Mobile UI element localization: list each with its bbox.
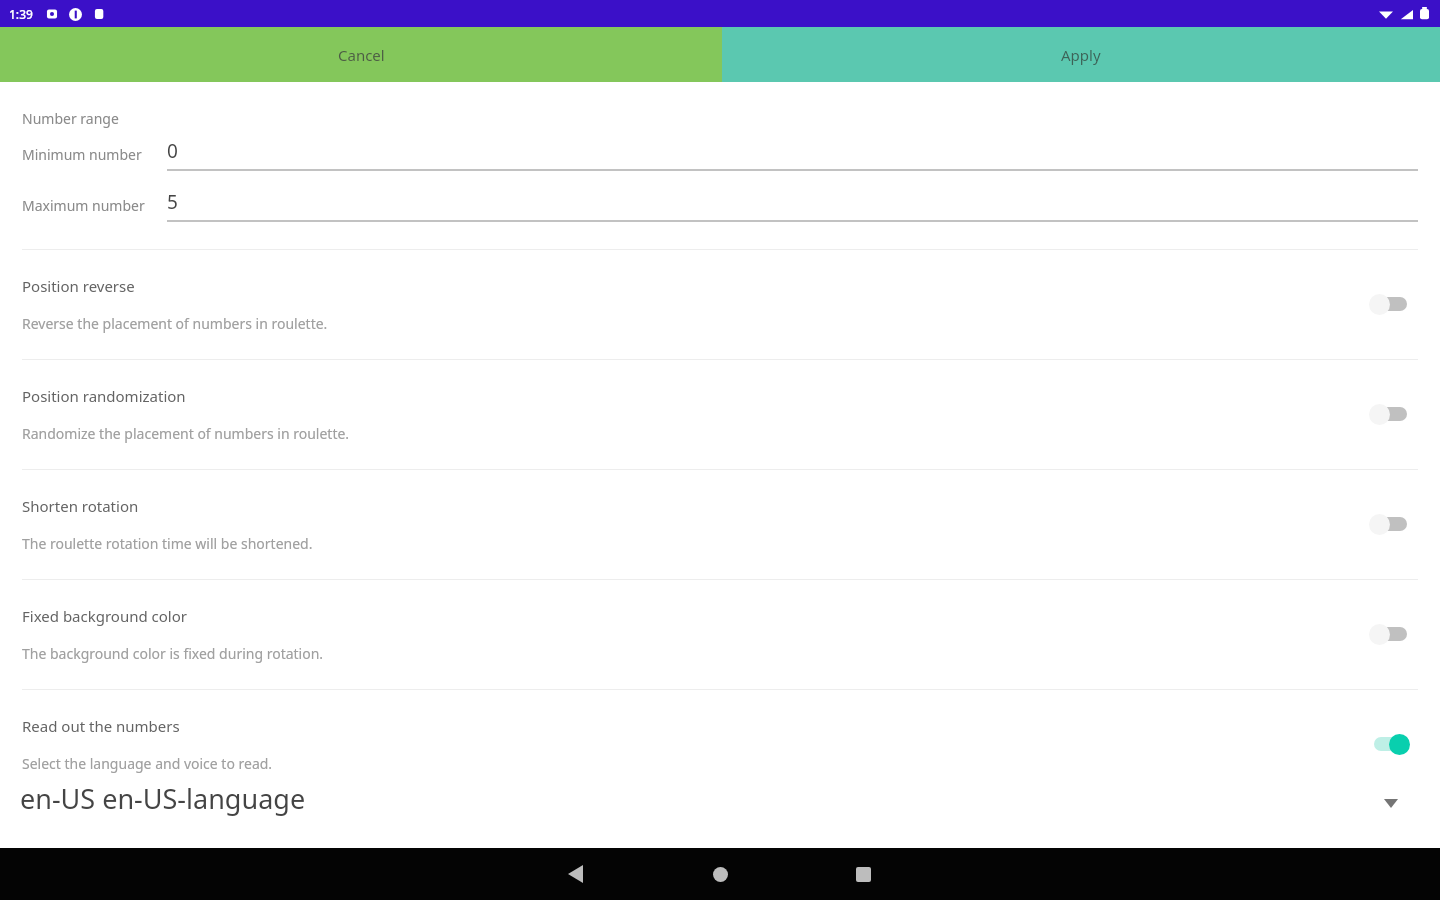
button[interactable]: Fixed background color — [1363, 616, 1419, 652]
button[interactable]: Read out the numbers — [1363, 726, 1419, 762]
button[interactable]: en-US en-US-language — [0, 774, 1440, 832]
button[interactable]: Read out the numbers — [0, 689, 1440, 799]
staticText: 5 — [167, 189, 178, 215]
staticText: Minimum number — [22, 145, 142, 164]
other: Select language — [1384, 799, 1398, 808]
staticText: Position reverse — [22, 276, 135, 296]
button[interactable]: Position randomization — [0, 359, 1440, 469]
staticText: Maximum number — [22, 196, 145, 215]
staticText: 0 — [167, 138, 178, 164]
staticText: Cancel — [338, 45, 385, 65]
button[interactable]: Fixed background color — [0, 579, 1440, 689]
staticText: Position randomization — [22, 386, 186, 406]
staticText: en-US en-US-language — [20, 780, 306, 817]
staticText: Shorten rotation — [22, 496, 139, 516]
staticText: Fixed background color — [22, 606, 188, 626]
button[interactable]: Recent apps — [844, 855, 882, 893]
staticText: 1:39 — [9, 6, 33, 22]
button[interactable]: Cancel — [0, 27, 722, 82]
button[interactable]: Home — [701, 855, 739, 893]
button[interactable]: Shorten rotation — [1363, 506, 1419, 542]
button[interactable]: Position reverse — [1363, 286, 1419, 322]
staticText: The background color is fixed during rot… — [22, 644, 324, 663]
staticText: The roulette rotation time will be short… — [22, 534, 313, 553]
staticText: Number range — [22, 109, 119, 128]
button[interactable]: Shorten rotation — [0, 469, 1440, 579]
button[interactable]: Position randomization — [1363, 396, 1419, 432]
staticText: Reverse the placement of numbers in roul… — [22, 314, 328, 333]
button[interactable]: Apply — [722, 27, 1440, 82]
staticText: Randomize the placement of numbers in ro… — [22, 424, 350, 443]
staticText: Apply — [1061, 45, 1101, 65]
staticText: Read out the numbers — [22, 716, 180, 736]
staticText: Select the language and voice to read. — [22, 754, 273, 773]
button[interactable]: Position reverse — [0, 249, 1440, 359]
button[interactable]: Back — [556, 855, 594, 893]
